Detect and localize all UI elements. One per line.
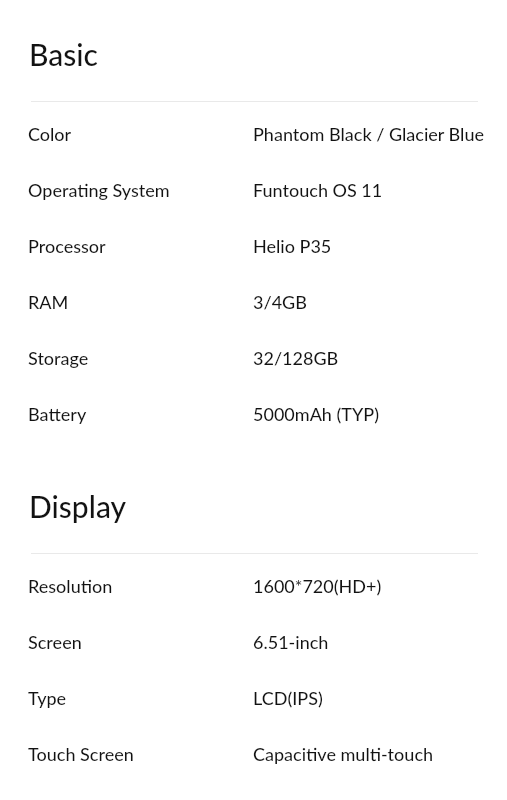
staticText: Color [28, 123, 253, 145]
staticText: Phantom Black / Glacier Blue [253, 123, 485, 145]
staticText: Storage [28, 347, 253, 369]
staticText: Resolution [28, 575, 253, 597]
staticText: Screen [28, 631, 253, 653]
button[interactable]: Operating System [0, 164, 507, 220]
staticText: Battery [28, 403, 253, 425]
staticText: Processor [28, 235, 253, 257]
button[interactable]: Resolution [0, 560, 507, 616]
button[interactable]: Type [0, 672, 507, 728]
staticText: 32/128GB [253, 347, 339, 369]
staticText: LCD(IPS) [253, 687, 323, 709]
staticText: 3/4GB [253, 291, 307, 313]
staticText: 5000mAh (TYP) [253, 403, 380, 425]
staticText: RAM [28, 291, 253, 313]
button[interactable]: Color [0, 108, 507, 164]
staticText: Type [28, 687, 253, 709]
staticText: Touch Screen [28, 743, 253, 765]
staticText: Funtouch OS 11 [253, 179, 383, 201]
staticText: Operating System [28, 179, 253, 201]
staticText: Helio P35 [253, 235, 332, 257]
button[interactable]: Processor [0, 220, 507, 276]
button[interactable]: Screen [0, 616, 507, 672]
staticText: Basic [29, 36, 98, 72]
button[interactable]: Storage [0, 332, 507, 388]
staticText: Capacitive multi-touch [253, 743, 434, 765]
button[interactable]: Touch Screen [0, 728, 507, 784]
button[interactable]: RAM [0, 276, 507, 332]
staticText: 1600*720(HD+) [253, 575, 382, 597]
staticText: 6.51-inch [253, 631, 329, 653]
button[interactable]: Battery [0, 388, 507, 444]
staticText: Display [29, 488, 127, 524]
